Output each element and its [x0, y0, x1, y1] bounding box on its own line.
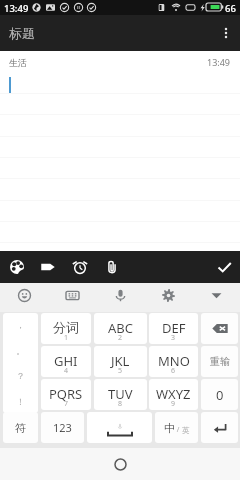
staticText: 分词	[53, 319, 79, 335]
button[interactable]: Hide keyboard	[202, 283, 230, 308]
button[interactable]: Voice input	[106, 283, 134, 308]
staticText: 符	[15, 421, 26, 435]
button[interactable]: Home	[107, 451, 133, 477]
staticText: ，	[16, 319, 25, 330]
button[interactable]: 中	[155, 412, 198, 443]
button[interactable]: Backspace	[201, 313, 238, 344]
staticText: ！	[16, 396, 25, 407]
button[interactable]: 123	[41, 412, 84, 443]
staticText: 123	[53, 420, 72, 435]
button[interactable]: Space	[87, 412, 152, 443]
staticText: 13:49	[4, 2, 29, 15]
button[interactable]: GHI	[41, 346, 91, 377]
staticText: 1	[64, 333, 69, 343]
button[interactable]: 重输	[201, 346, 238, 377]
button[interactable]: Done	[209, 251, 239, 283]
staticText: 英	[182, 426, 190, 435]
button[interactable]: More options	[212, 15, 240, 51]
staticText: 。	[16, 345, 25, 356]
staticText: 9	[171, 399, 176, 409]
button[interactable]: Color	[2, 251, 32, 283]
staticText: PQRS	[49, 385, 83, 403]
staticText: 生活	[9, 57, 27, 68]
staticText: 5	[118, 366, 123, 376]
staticText: 7	[64, 399, 69, 409]
staticText: ABC	[108, 319, 133, 337]
staticText: 3	[171, 333, 176, 343]
staticText: DEF	[162, 319, 186, 337]
staticText: ？	[16, 370, 25, 381]
button[interactable]: PQRS	[41, 379, 91, 410]
button[interactable]: Settings	[154, 283, 182, 308]
button[interactable]: Attach	[97, 251, 127, 283]
button[interactable]: Enter	[201, 412, 238, 443]
button[interactable]: 符	[3, 412, 38, 443]
staticText: WXYZ	[156, 385, 191, 403]
button[interactable]: MNO	[149, 346, 198, 377]
button[interactable]: TUV	[94, 379, 147, 410]
button[interactable]: Keyboard	[58, 283, 86, 308]
staticText: GHI	[54, 352, 78, 370]
button[interactable]: DEF	[149, 313, 198, 344]
button[interactable]: Reminder	[65, 251, 95, 283]
staticText: 0	[216, 386, 224, 404]
staticText: 66	[225, 2, 236, 15]
button[interactable]: Punctuation	[3, 313, 38, 413]
staticText: 标题	[9, 25, 35, 41]
staticText: 4	[64, 366, 69, 376]
button[interactable]: ABC	[94, 313, 147, 344]
staticText: JKL	[111, 352, 130, 370]
staticText: 重输	[210, 355, 230, 368]
button[interactable]: JKL	[94, 346, 147, 377]
staticText: TUV	[108, 385, 133, 403]
staticText: 中	[164, 421, 175, 435]
staticText: MNO	[158, 352, 190, 370]
staticText: 2	[118, 333, 123, 343]
button[interactable]: 0	[201, 379, 238, 410]
staticText: 13:49	[207, 56, 231, 68]
button[interactable]: 分词	[41, 313, 91, 344]
button[interactable]: Label	[33, 251, 63, 283]
button[interactable]: Emoji	[10, 283, 38, 308]
button[interactable]: WXYZ	[149, 379, 198, 410]
staticText: 8	[118, 399, 123, 409]
staticText: 6	[171, 366, 176, 376]
staticText: /	[175, 425, 182, 435]
